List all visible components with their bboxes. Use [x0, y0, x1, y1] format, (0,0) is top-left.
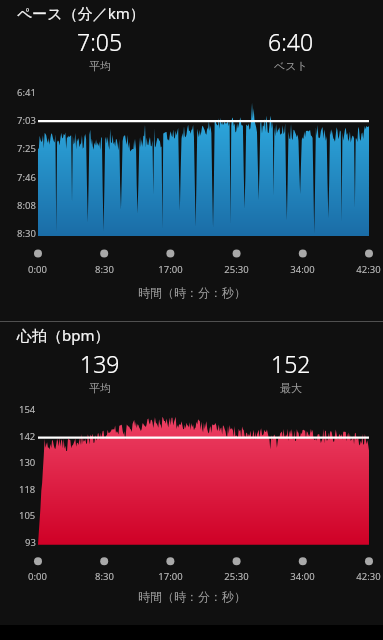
staticText: 6:40	[268, 26, 314, 57]
staticText: 17:00	[158, 570, 183, 583]
staticText: 7:25	[17, 142, 36, 155]
staticText: 42:30	[356, 570, 381, 583]
staticText: 平均	[89, 381, 111, 395]
button[interactable]: 時間（時：分：秒）	[0, 285, 383, 300]
staticText: 142	[19, 430, 36, 443]
staticText: 6:41	[17, 86, 36, 99]
staticText: 7:46	[17, 171, 36, 184]
staticText: 心拍（bpm）	[17, 325, 110, 345]
button[interactable]: 6:40	[199, 26, 383, 73]
button[interactable]: 心拍（bpm） chart	[0, 322, 383, 625]
staticText: ペース（分／km）	[17, 3, 145, 23]
staticText: 42:30	[356, 263, 381, 276]
staticText: 34:00	[290, 263, 315, 276]
staticText: ベスト	[274, 59, 308, 73]
staticText: 8:30	[95, 570, 114, 583]
staticText: 0:00	[28, 263, 47, 276]
staticText: 0:00	[28, 570, 47, 583]
button[interactable]: ペース（分／km）	[17, 3, 383, 23]
staticText: 17:00	[158, 263, 183, 276]
button[interactable]: ペース（分／km） chart	[0, 0, 383, 321]
staticText: 最大	[280, 381, 302, 395]
staticText: 25:30	[224, 263, 249, 276]
staticText: 25:30	[224, 570, 249, 583]
staticText: 152	[271, 348, 311, 379]
staticText: 8:30	[95, 263, 114, 276]
staticText: 8:30	[17, 227, 36, 240]
staticText: 139	[80, 348, 120, 379]
staticText: 時間（時：分：秒）	[138, 589, 246, 604]
button[interactable]: 139	[0, 348, 199, 395]
button[interactable]: 心拍（bpm）	[17, 325, 383, 345]
button[interactable]: 7:05	[0, 26, 199, 73]
staticText: 8:08	[17, 199, 36, 212]
staticText: 105	[19, 509, 36, 522]
staticText: 7:03	[17, 114, 36, 127]
staticText: 7:05	[77, 26, 123, 57]
staticText: 平均	[89, 59, 111, 73]
staticText: 時間（時：分：秒）	[138, 285, 246, 300]
button[interactable]: 152	[199, 348, 383, 395]
staticText: 93	[25, 536, 36, 549]
button[interactable]: 時間（時：分：秒）	[0, 589, 383, 604]
staticText: 34:00	[290, 570, 315, 583]
staticText: 118	[19, 483, 36, 496]
staticText: 154	[19, 403, 36, 416]
staticText: 130	[19, 456, 36, 469]
